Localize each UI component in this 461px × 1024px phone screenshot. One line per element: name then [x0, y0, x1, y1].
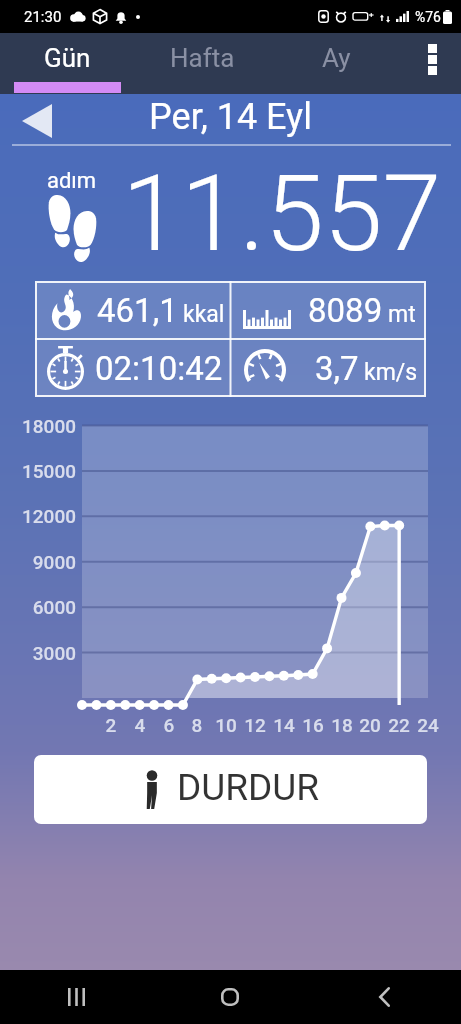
staticText: mt	[388, 301, 416, 328]
button[interactable]: Recent apps	[0, 970, 153, 1024]
staticText: 10	[210, 714, 242, 736]
staticText: 12000	[0, 505, 76, 527]
staticText: 8089	[308, 291, 383, 330]
staticText: 4	[124, 714, 156, 736]
staticText: 02:10:42	[95, 349, 223, 388]
staticText: 3,7	[315, 349, 359, 388]
staticText: km/s	[364, 359, 418, 386]
button[interactable]: Previous day	[6, 97, 68, 145]
staticText: 3000	[0, 642, 76, 664]
staticText: 8	[181, 714, 213, 736]
staticText: Hafta	[170, 43, 235, 73]
staticText: 22	[383, 714, 415, 736]
button[interactable]: Home	[153, 970, 307, 1024]
staticText: 11.557	[122, 152, 442, 276]
staticText: 6000	[0, 596, 76, 618]
button[interactable]: 8089	[230, 281, 426, 339]
staticText: 21:30	[24, 8, 62, 26]
staticText: adım	[47, 168, 97, 194]
button[interactable]: Ay	[269, 33, 403, 94]
staticText: 24	[412, 714, 444, 736]
staticText: kkal	[183, 301, 225, 328]
staticText: 20	[354, 714, 386, 736]
staticText: 18000	[0, 415, 76, 437]
staticText: DURDUR	[177, 766, 320, 809]
staticText: 6	[153, 714, 185, 736]
staticText: 18	[326, 714, 358, 736]
staticText: 12	[239, 714, 271, 736]
staticText: 461,1	[97, 291, 178, 330]
button[interactable]: 3,7	[230, 339, 426, 397]
button[interactable]: More options	[403, 33, 461, 94]
staticText: %76	[415, 9, 441, 25]
staticText: 16	[297, 714, 329, 736]
staticText: Ay	[322, 43, 351, 73]
staticText: 9000	[0, 551, 76, 573]
staticText: Gün	[44, 43, 91, 73]
staticText: 15000	[0, 460, 76, 482]
button[interactable]: Gün	[0, 33, 135, 94]
button[interactable]: Hafta	[135, 33, 269, 94]
button[interactable]: 02:10:42	[35, 339, 230, 397]
staticText: 2	[95, 714, 127, 736]
button[interactable]: DURDUR	[34, 755, 427, 824]
staticText: 14	[268, 714, 300, 736]
staticText: Per, 14 Eyl	[0, 96, 461, 138]
button[interactable]: Back	[307, 970, 461, 1024]
button[interactable]: 461,1	[35, 281, 230, 339]
